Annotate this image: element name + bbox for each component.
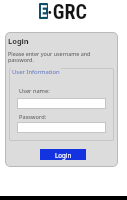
staticText: User name: <box>19 87 50 95</box>
staticText: Password: <box>19 113 47 121</box>
staticText: Please enter your username and password. <box>8 50 91 64</box>
button[interactable]: Login <box>40 149 86 160</box>
staticText: ·GRC <box>47 0 87 23</box>
staticText: Login <box>8 36 29 46</box>
staticText: Login <box>55 151 72 159</box>
staticText: User Information <box>12 68 60 76</box>
